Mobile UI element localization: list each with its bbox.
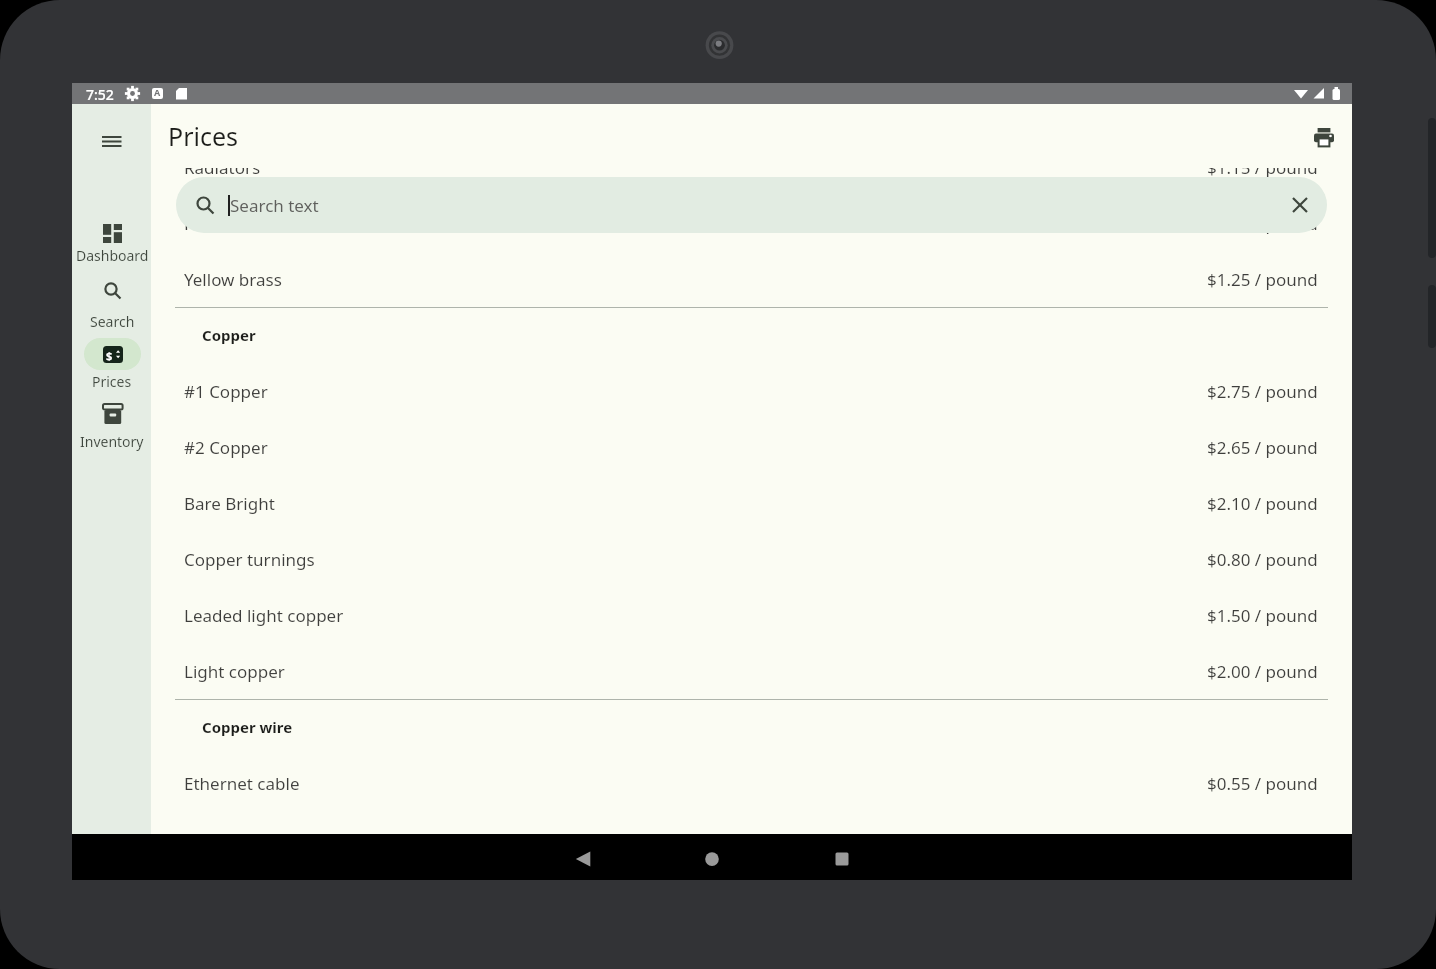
button[interactable]: Copper turnings [151, 531, 1352, 587]
staticText: Search [90, 312, 135, 331]
button[interactable] [563, 839, 603, 879]
button[interactable]: Search [72, 263, 152, 331]
staticText: $2.65 / pound [1207, 436, 1318, 459]
staticText: $2.75 / pound [1207, 380, 1318, 403]
button[interactable]: Red brass [151, 195, 1352, 251]
staticText: Prices [168, 119, 238, 153]
staticText: $1.40 / pound [1207, 212, 1318, 235]
staticText: #2 Copper [184, 436, 268, 459]
staticText: Copper [202, 325, 256, 345]
staticText: $0.80 / pound [1207, 548, 1318, 571]
staticText: Ethernet cable [184, 772, 300, 795]
staticText: $1.25 / pound [1207, 268, 1318, 291]
button[interactable] [93, 125, 131, 159]
button[interactable] [1276, 181, 1324, 229]
button[interactable]: Yellow brass [151, 251, 1352, 307]
staticText: Yellow brass [184, 268, 282, 291]
button[interactable]: Leaded light copper [151, 587, 1352, 643]
staticText: Bare Bright [184, 492, 275, 515]
button[interactable]: $ [72, 326, 152, 391]
staticText: #1 Copper [184, 380, 268, 403]
staticText: $2.00 / pound [1207, 660, 1318, 683]
staticText: Dashboard [76, 246, 149, 265]
button[interactable] [692, 839, 732, 879]
staticText: Copper wire [202, 717, 293, 737]
staticText: Search text [230, 194, 319, 217]
staticText: Red brass [184, 212, 262, 235]
button[interactable]: Ethernet cable [151, 755, 1352, 811]
button[interactable]: Dashboard [72, 205, 152, 265]
button[interactable]: Light copper [151, 643, 1352, 699]
button[interactable]: #2 Copper [151, 419, 1352, 475]
staticText: $1.50 / pound [1207, 604, 1318, 627]
button[interactable] [1309, 123, 1339, 153]
staticText: Leaded light copper [184, 604, 344, 627]
button[interactable]: #1 Copper [151, 363, 1352, 419]
staticText: $1.15 / pound [1207, 168, 1318, 179]
button[interactable] [822, 839, 862, 879]
staticText: 7:52 [86, 85, 114, 104]
staticText: Copper turnings [184, 548, 315, 571]
staticText: Prices [92, 372, 132, 391]
button[interactable]: Search text [176, 177, 1327, 233]
button[interactable]: Bare Bright [151, 475, 1352, 531]
staticText: $ [106, 348, 113, 363]
button[interactable]: Inventory [72, 386, 152, 451]
staticText: $2.10 / pound [1207, 492, 1318, 515]
button[interactable]: Radiators [151, 168, 1352, 195]
staticText: Light copper [184, 660, 285, 683]
staticText: Inventory [80, 432, 144, 451]
staticText: A [154, 86, 161, 98]
staticText: $0.55 / pound [1207, 772, 1318, 795]
staticText: Radiators [184, 168, 261, 179]
